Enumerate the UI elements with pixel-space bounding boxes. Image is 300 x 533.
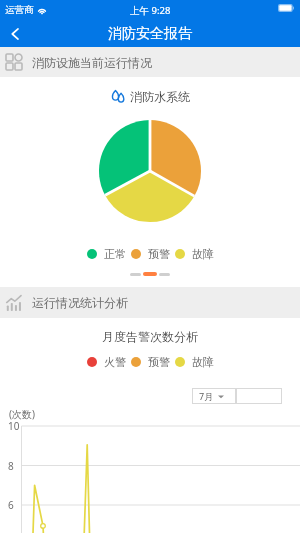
staticText: 故障 <box>192 247 214 261</box>
staticText: 7月 <box>199 390 214 402</box>
staticText: 消防设施当前运行情况 <box>32 55 152 70</box>
staticText: 消防水系统 <box>130 89 190 104</box>
button[interactable]: 7月 <box>199 388 236 404</box>
staticText: 预警 <box>148 247 170 261</box>
staticText: 月度告警次数分析 <box>102 329 198 344</box>
button[interactable] <box>236 388 282 404</box>
staticText: 消防安全报告 <box>108 25 192 43</box>
staticText: 故障 <box>192 355 214 369</box>
staticText: 6 <box>8 498 14 512</box>
button[interactable]: 返回 <box>0 20 30 47</box>
staticText: (次数) <box>9 407 35 421</box>
staticText: 运行情况统计分析 <box>32 295 128 310</box>
staticText: 预警 <box>148 355 170 369</box>
staticText: 火警 <box>104 355 126 369</box>
staticText: 运营商 <box>5 4 34 16</box>
staticText: 10 <box>8 419 20 433</box>
staticText: 上午 9:28 <box>130 4 171 17</box>
staticText: 正常 <box>104 247 126 261</box>
staticText: 8 <box>8 459 14 473</box>
